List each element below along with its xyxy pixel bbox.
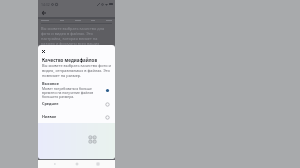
button[interactable]: Home: [73, 160, 81, 168]
button[interactable]: Низкое: [42, 114, 112, 121]
staticText: Высокое: [42, 81, 59, 86]
staticText: Качество медиафайлов: [42, 57, 98, 63]
staticText: Вы можете выбрать качество для фото и ви…: [41, 26, 112, 45]
button[interactable]: Recents: [94, 160, 102, 168]
staticText: Низкое: [42, 114, 57, 119]
staticText: 14:32: [41, 2, 50, 7]
button[interactable]: Среднее: [42, 101, 112, 108]
button[interactable]: Back: [51, 160, 59, 168]
staticText: Среднее: [42, 101, 59, 106]
button[interactable]: Back: [40, 9, 48, 17]
staticText: Может потребоваться больше времени на по…: [42, 86, 94, 99]
button[interactable]: Высокое: [42, 81, 112, 99]
staticText: Вы можете выбрать качество фото и видео,…: [42, 63, 112, 78]
button[interactable]: Close: [42, 48, 49, 55]
